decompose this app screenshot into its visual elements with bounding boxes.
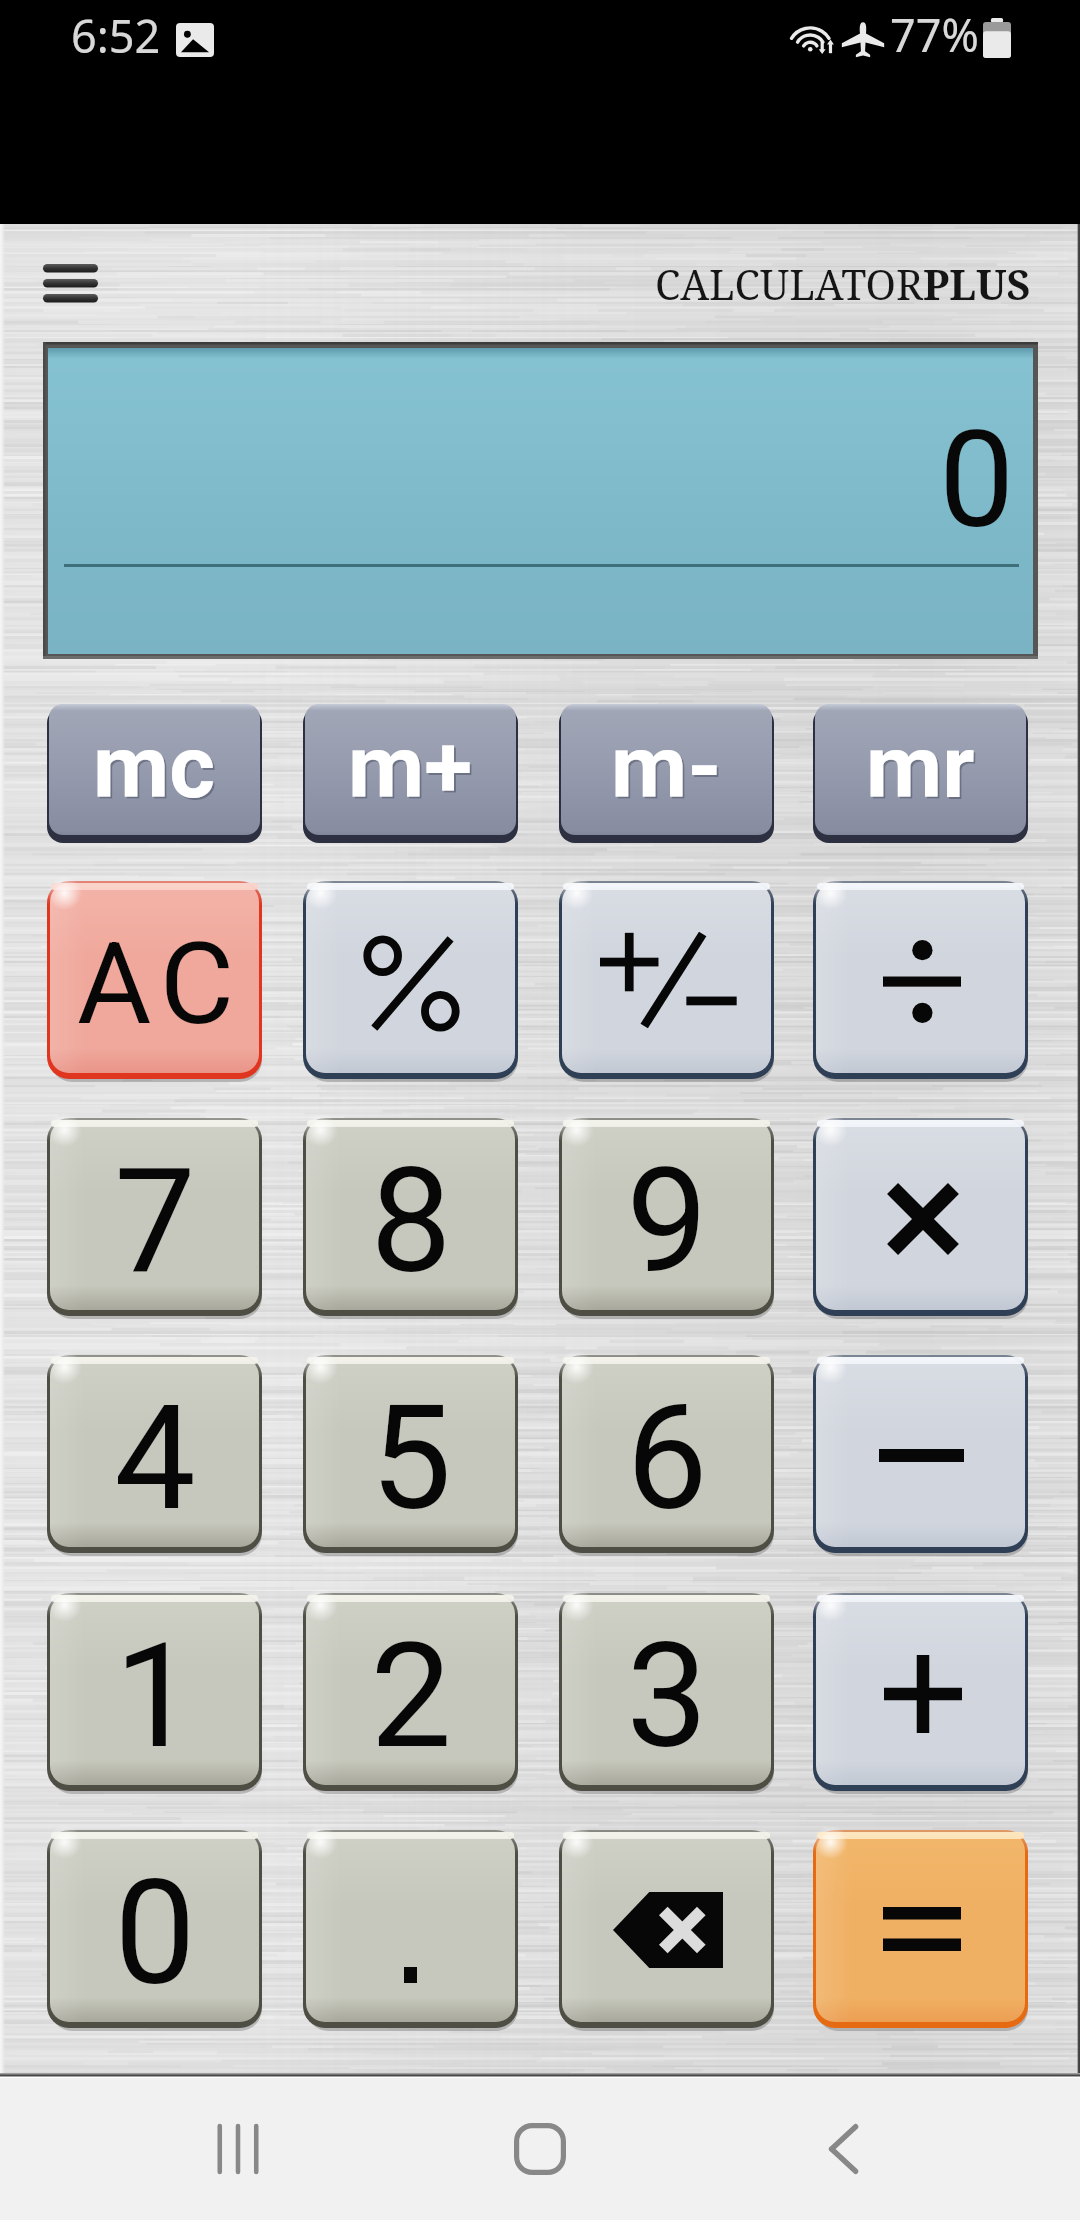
button[interactable]: 1 (47, 1593, 262, 1792)
button[interactable]: mc (47, 703, 262, 843)
button[interactable]: 5 (303, 1355, 518, 1554)
button[interactable]: Menu (10, 236, 130, 332)
staticText: 9 (626, 1136, 708, 1306)
staticText: 1 (114, 1611, 196, 1781)
staticText: 6 (626, 1373, 708, 1543)
staticText: 0 (114, 1848, 196, 2018)
staticText: 8 (370, 1136, 452, 1306)
staticText: 4 (114, 1373, 196, 1543)
button[interactable]: 0 (47, 1830, 262, 2029)
button[interactable]: m+ (303, 703, 518, 843)
button[interactable]: 8 (303, 1118, 518, 1317)
button[interactable]: Decimal point (303, 1830, 518, 2029)
button[interactable]: AC (47, 881, 262, 1080)
button[interactable]: Back (763, 2078, 923, 2220)
staticText: 5 (370, 1373, 452, 1543)
button[interactable]: 3 (559, 1593, 774, 1792)
button[interactable]: Backspace (559, 1830, 774, 2029)
button[interactable]: 7 (47, 1118, 262, 1317)
staticText: m- (611, 715, 722, 818)
button[interactable]: Home (460, 2078, 620, 2220)
button[interactable]: mr (813, 703, 1028, 843)
staticText: 2 (370, 1611, 452, 1781)
button[interactable]: 4 (47, 1355, 262, 1554)
button[interactable]: 9 (559, 1118, 774, 1317)
button[interactable]: m- (559, 703, 774, 843)
staticText: 0 (939, 402, 1015, 559)
button[interactable]: 2 (303, 1593, 518, 1792)
button[interactable]: Add (813, 1593, 1028, 1792)
button[interactable]: % (303, 881, 518, 1080)
staticText: 3 (626, 1611, 708, 1781)
staticText: PLUS (923, 256, 1031, 312)
staticText: m+ (350, 717, 475, 820)
button[interactable]: Recents (158, 2078, 318, 2220)
staticText: 6:52 (71, 5, 161, 66)
staticText: mr (868, 717, 977, 820)
staticText: m+ (348, 715, 473, 818)
staticText: CALCULATOR (655, 256, 923, 312)
staticText: mr (866, 715, 975, 818)
button[interactable]: Divide (813, 881, 1028, 1080)
staticText: AC (77, 917, 243, 1051)
staticText: 7 (114, 1136, 196, 1306)
button[interactable]: Subtract (813, 1355, 1028, 1554)
staticText: mc (95, 717, 218, 820)
staticText: m- (613, 717, 724, 820)
button[interactable]: Equals (813, 1830, 1028, 2029)
button[interactable]: Multiply (813, 1118, 1028, 1317)
button[interactable]: 6 (559, 1355, 774, 1554)
button[interactable]: +/- (559, 881, 774, 1080)
staticText: mc (93, 715, 216, 818)
staticText: 77% (890, 4, 979, 65)
